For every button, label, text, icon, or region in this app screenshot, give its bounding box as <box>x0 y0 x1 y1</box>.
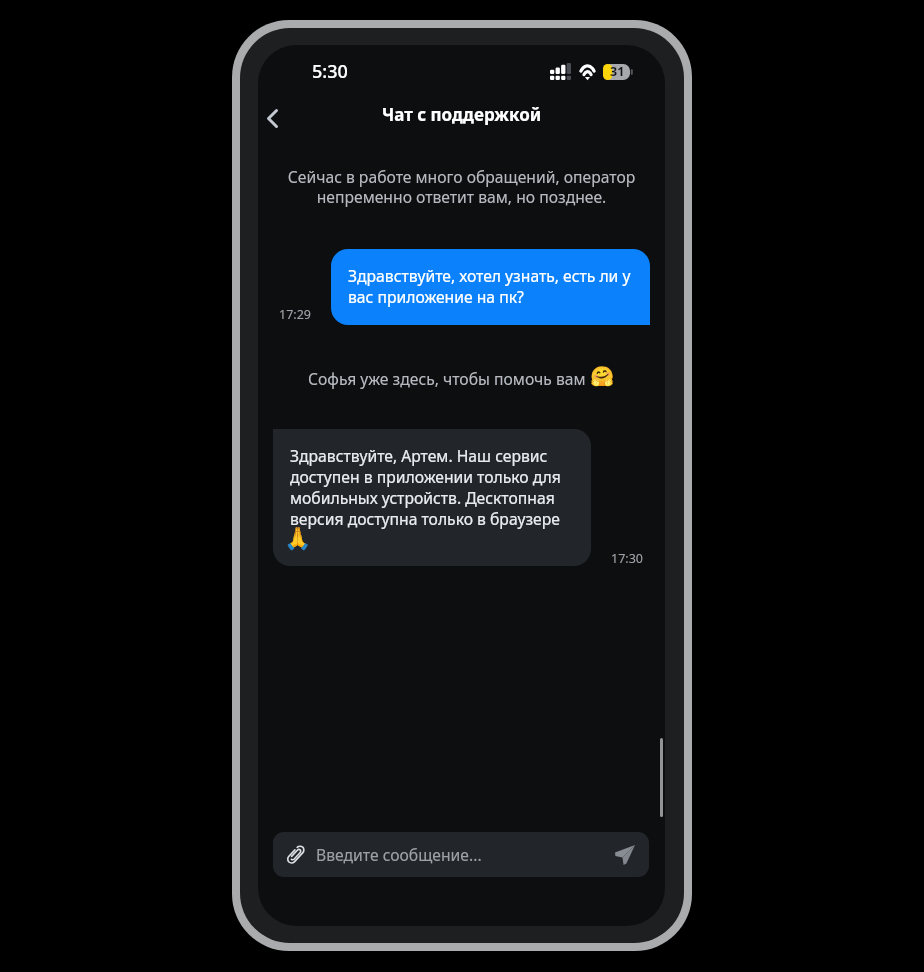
button[interactable]: Back <box>258 96 295 141</box>
button[interactable]: Send <box>614 844 636 866</box>
staticText: 🤗 <box>590 365 615 388</box>
staticText: Здравствуйте, хотел узнать, есть ли у ва… <box>348 265 631 307</box>
staticText: Здравствуйте, Артем. Наш сервис доступен… <box>290 445 561 529</box>
staticText: Сейчас в работе много обращений, операто… <box>280 166 643 208</box>
staticText: 17:30 <box>611 550 643 567</box>
staticText: 17:29 <box>279 306 311 323</box>
staticText: Софья уже здесь, чтобы помочь вам <box>308 368 590 389</box>
button[interactable]: Attach file <box>273 832 649 877</box>
staticText: 31 <box>610 63 625 80</box>
button[interactable]: Здравствуйте, хотел узнать, есть ли у ва… <box>331 249 650 325</box>
staticText: Чат с поддержкой <box>382 103 542 126</box>
button[interactable]: Здравствуйте, Артем. Наш сервис доступен… <box>273 429 591 566</box>
staticText: Введите сообщение... <box>316 844 482 865</box>
staticText: 🙏 <box>284 526 312 552</box>
button[interactable]: Attach file <box>286 843 306 867</box>
staticText: 5:30 <box>312 59 348 84</box>
